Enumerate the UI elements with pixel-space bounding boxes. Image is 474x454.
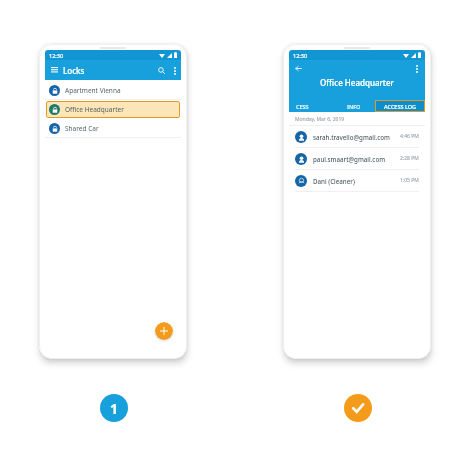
- button[interactable]: Shared Car: [45, 119, 181, 137]
- staticText: Locks: [63, 65, 85, 76]
- staticText: Shared Car: [65, 124, 99, 133]
- staticText: 4:46 PM: [400, 133, 419, 140]
- staticText: 2:28 PM: [400, 155, 419, 162]
- button[interactable]: Menu: [48, 64, 60, 76]
- button[interactable]: Add lock: [155, 322, 173, 340]
- staticText: ACCESS LOG: [384, 103, 417, 110]
- button[interactable]: INFO: [332, 100, 375, 112]
- staticText: CESS: [296, 103, 309, 110]
- staticText: Monday, Mar 6, 2019: [295, 116, 345, 123]
- staticText: sarah.travello@gmail.com: [313, 133, 400, 141]
- button[interactable]: More options: [168, 64, 181, 77]
- staticText: INFO: [347, 103, 361, 110]
- staticText: Apartment Vienna: [65, 86, 121, 95]
- button[interactable]: Office Headquarter: [46, 101, 180, 118]
- staticText: Office Headquarter: [289, 77, 425, 88]
- staticText: Dani (Cleaner): [313, 177, 400, 185]
- staticText: Office Headquarter: [65, 105, 124, 114]
- button[interactable]: Apartment Vienna: [45, 81, 181, 99]
- staticText: 12:30: [293, 52, 308, 59]
- button[interactable]: ACCESS LOG: [375, 100, 425, 112]
- staticText: 1: [110, 399, 119, 418]
- staticText: paul.smaart@gmail.com: [313, 155, 400, 163]
- button[interactable]: paul.smaart@gmail.com: [289, 148, 425, 169]
- button[interactable]: 1: [100, 394, 128, 422]
- button[interactable]: Back: [292, 62, 305, 75]
- staticText: 12:30: [49, 52, 64, 59]
- button[interactable]: Dani (Cleaner): [289, 170, 425, 191]
- button[interactable]: More options: [410, 62, 423, 75]
- staticText: 1:05 PM: [400, 177, 419, 184]
- button[interactable]: CESS: [289, 100, 332, 112]
- button[interactable]: Search: [154, 63, 168, 77]
- button[interactable]: Completed: [344, 394, 372, 422]
- button[interactable]: sarah.travello@gmail.com: [289, 126, 425, 147]
